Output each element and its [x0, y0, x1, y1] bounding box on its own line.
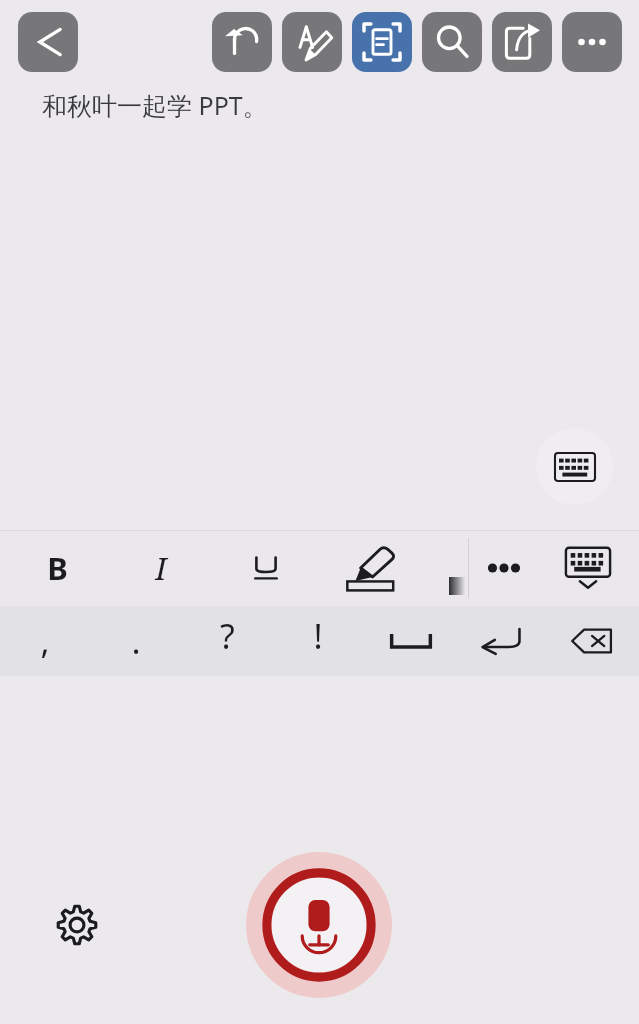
- staticText: I: [155, 547, 167, 589]
- button[interactable]: Underline: [231, 538, 301, 598]
- staticText: .: [131, 618, 141, 664]
- button[interactable]: Space: [373, 618, 449, 664]
- button[interactable]: More formatting: [473, 538, 535, 598]
- staticText: B: [47, 547, 68, 589]
- button[interactable]: Highlight: [334, 540, 408, 596]
- button[interactable]: Exclamation mark: [280, 613, 356, 659]
- button[interactable]: Italic: [126, 538, 196, 598]
- button[interactable]: Enter: [463, 618, 539, 664]
- button[interactable]: Question mark: [189, 613, 265, 659]
- button[interactable]: Bold: [22, 538, 92, 598]
- button[interactable]: Back: [18, 12, 78, 72]
- button[interactable]: Show keyboard: [536, 428, 613, 505]
- button[interactable]: Backspace: [554, 618, 630, 664]
- button[interactable]: Annotate: [282, 12, 342, 72]
- button[interactable]: Hide keyboard: [554, 536, 622, 600]
- button[interactable]: Share: [492, 12, 552, 72]
- button[interactable]: Comma: [7, 618, 83, 664]
- staticText: ,: [40, 618, 50, 664]
- button[interactable]: Microphone: [246, 852, 392, 998]
- staticText: !: [313, 613, 323, 659]
- button[interactable]: Settings: [50, 898, 104, 952]
- button[interactable]: Period: [98, 618, 174, 664]
- button[interactable]: More options: [562, 12, 622, 72]
- staticText: 和秋叶一起学 PPT。: [42, 88, 268, 122]
- button[interactable]: Scan document: [352, 12, 412, 72]
- button[interactable]: Search: [422, 12, 482, 72]
- staticText: ?: [220, 613, 235, 659]
- button[interactable]: Undo: [212, 12, 272, 72]
